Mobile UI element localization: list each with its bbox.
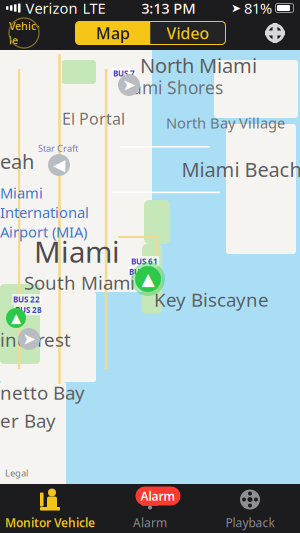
staticText: BUS 28 <box>15 305 42 315</box>
staticText: ➤ <box>231 1 241 15</box>
staticText: er Bay <box>0 408 56 433</box>
button[interactable]: Monitor Vehicle <box>0 484 100 533</box>
staticText: eah <box>0 148 34 175</box>
staticText: Miami Beach <box>181 156 300 183</box>
staticText: Star Craft <box>38 142 78 154</box>
staticText: Miami <box>0 183 43 202</box>
button[interactable]: Vehicle <box>9 18 39 48</box>
staticText: Map <box>96 22 130 44</box>
staticText: BUS 7 <box>113 68 135 79</box>
staticText: Verizon <box>25 0 77 18</box>
staticText: ▲ <box>11 310 21 325</box>
staticText: Vehicle <box>9 19 39 47</box>
staticText: International <box>0 202 89 222</box>
staticText: ▲ <box>141 269 154 289</box>
staticText: Alarm <box>140 488 175 504</box>
staticText: BUS 61 <box>131 256 158 267</box>
staticText: 81% <box>244 0 272 18</box>
button[interactable]: Alarm <box>100 484 200 533</box>
button[interactable]: Video <box>150 21 225 44</box>
staticText: ami Shores <box>132 76 223 99</box>
staticText: Miami <box>34 232 120 271</box>
button[interactable]: Playback <box>200 484 300 533</box>
staticText: Playback <box>225 514 274 530</box>
staticText: Monitor Vehicle <box>5 514 95 530</box>
button[interactable]: Map <box>75 21 150 44</box>
staticText: LTE <box>82 0 105 18</box>
staticText: Airport (MIA) <box>0 222 87 241</box>
staticText: ➤ <box>22 330 35 348</box>
staticText: netto Bay <box>0 380 85 405</box>
staticText: ◀ <box>53 156 65 174</box>
staticText: BUS 22 <box>13 294 40 305</box>
staticText: Key Biscayne <box>154 287 269 312</box>
staticText: 3:13 PM <box>141 0 195 18</box>
staticText: South Miami <box>24 270 135 295</box>
staticText: Legal <box>5 467 28 479</box>
staticText: North Miami <box>140 52 257 79</box>
staticText: North Bay Village <box>166 113 285 132</box>
staticText: El Portal <box>62 108 125 129</box>
button[interactable]: Settings <box>262 20 288 46</box>
staticText: ➤ <box>122 76 135 94</box>
staticText: Video <box>166 22 209 44</box>
staticText: inecrest <box>0 327 71 352</box>
staticText: Alarm <box>133 514 167 530</box>
staticText: BUS 45 <box>129 267 156 277</box>
